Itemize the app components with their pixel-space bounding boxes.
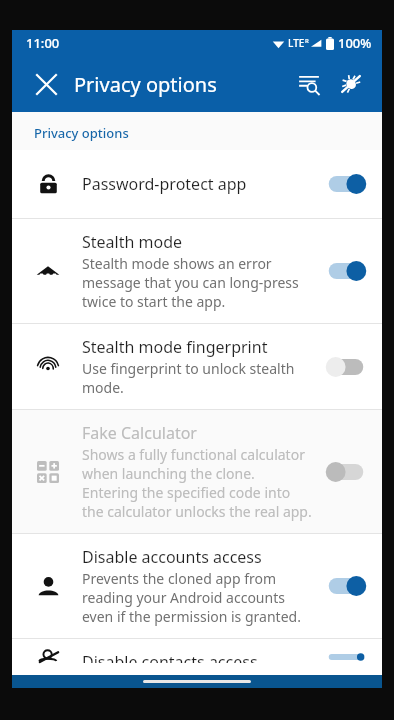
staticText: Privacy options	[34, 124, 129, 142]
button[interactable]: Toggle	[322, 351, 370, 383]
staticText: Password-protect app	[82, 173, 247, 195]
button[interactable]: Stealth mode fingerprint	[12, 324, 382, 409]
button[interactable]: Search filter	[288, 63, 330, 105]
button[interactable]: Disable accounts access	[12, 534, 382, 638]
button[interactable]: Toggle	[322, 255, 370, 287]
button[interactable]: Toggle	[322, 570, 370, 602]
button[interactable]: Password-protect app	[12, 150, 382, 218]
button[interactable]: Disable bug reporting	[330, 63, 372, 105]
button[interactable]: Toggle	[322, 651, 370, 663]
button[interactable]: Toggle	[322, 168, 370, 200]
staticText: Privacy options	[74, 71, 217, 98]
staticText: R	[305, 37, 309, 45]
staticText: Stealth mode	[82, 231, 183, 253]
staticText: Stealth mode fingerprint	[82, 336, 268, 358]
staticText: Fake Calculator	[82, 422, 197, 444]
button[interactable]: Close	[26, 64, 66, 104]
button[interactable]: Stealth mode	[12, 219, 382, 323]
staticText: Disable accounts access	[82, 546, 262, 568]
staticText: Shows a fully functional calculator when…	[82, 445, 312, 521]
button[interactable]: Toggle	[322, 456, 370, 488]
staticText: 11:00	[26, 34, 60, 52]
staticText: 100%	[338, 34, 372, 52]
staticText: Use fingerprint to unlock stealth mode.	[82, 359, 312, 397]
staticText: LTE	[288, 36, 305, 50]
button[interactable]: Fake Calculator	[12, 410, 382, 533]
staticText: Disable contacts access	[82, 651, 258, 663]
staticText: Prevents the cloned app from reading you…	[82, 569, 312, 626]
button[interactable]: Disable contacts access	[12, 639, 382, 675]
staticText: Stealth mode shows an error message that…	[82, 254, 312, 311]
